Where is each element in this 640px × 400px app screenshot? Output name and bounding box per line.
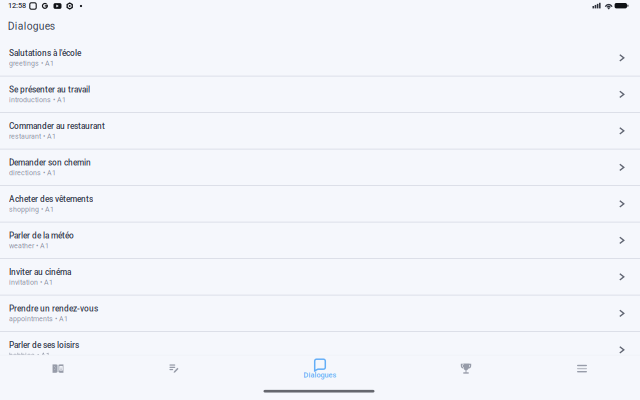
- staticText: weather • A1: [9, 242, 49, 250]
- staticText: Inviter au cinéma: [9, 267, 71, 277]
- button[interactable]: Acheter des vêtements: [0, 186, 640, 222]
- staticText: Parler de ses loisirs: [9, 340, 79, 350]
- button[interactable]: Salutations à l'école: [0, 40, 640, 76]
- staticText: Acheter des vêtements: [9, 194, 93, 204]
- staticText: 12:58: [8, 1, 26, 10]
- staticText: directions • A1: [9, 169, 56, 177]
- staticText: Parler de la météo: [9, 231, 74, 241]
- button[interactable]: Prendre un rendez-vous: [0, 295, 640, 331]
- button[interactable]: Commander au restaurant: [0, 113, 640, 149]
- staticText: Commander au restaurant: [9, 121, 105, 131]
- staticText: introductions • A1: [9, 96, 66, 104]
- button[interactable]: Se présenter au travail: [0, 76, 640, 112]
- button[interactable]: Dialogues: [232, 355, 408, 400]
- staticText: invitation • A1: [9, 278, 53, 286]
- button[interactable]: Demander son chemin: [0, 149, 640, 185]
- staticText: Prendre un rendez-vous: [9, 304, 98, 314]
- staticText: shopping • A1: [9, 205, 54, 213]
- staticText: Demander son chemin: [9, 158, 91, 168]
- staticText: greetings • A1: [9, 59, 54, 67]
- staticText: Se présenter au travail: [9, 85, 90, 95]
- staticText: restaurant • A1: [9, 132, 56, 140]
- button[interactable]: Exercises: [116, 355, 232, 400]
- button[interactable]: Inviter au cinéma: [0, 259, 640, 295]
- staticText: appointments • A1: [9, 315, 68, 323]
- button[interactable]: Lessons: [0, 355, 116, 400]
- staticText: Dialogues: [8, 20, 55, 32]
- button[interactable]: Parler de ses loisirs: [0, 332, 640, 368]
- staticText: hobbies • A1: [9, 351, 50, 359]
- staticText: Dialogues: [303, 371, 336, 379]
- button[interactable]: Menu: [524, 355, 640, 400]
- button[interactable]: Progress: [408, 355, 524, 400]
- staticText: Salutations à l'école: [9, 48, 81, 58]
- button[interactable]: Parler de la météo: [0, 222, 640, 258]
